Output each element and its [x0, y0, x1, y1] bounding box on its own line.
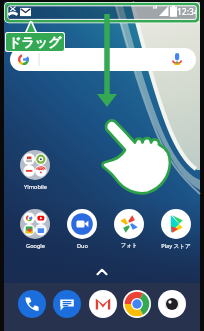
button[interactable]: Google [16, 209, 54, 250]
button[interactable]: Y!mobile [16, 150, 54, 191]
button[interactable]: Gmail [89, 290, 117, 318]
staticText: Play ストア [161, 242, 191, 250]
staticText: 12:34 [177, 6, 199, 18]
staticText: フォト [120, 242, 138, 249]
staticText: Y!mobile [24, 183, 47, 191]
staticText: Google [26, 242, 45, 250]
staticText: ドラッグ [8, 34, 62, 50]
button[interactable]: Chrome [123, 290, 151, 318]
button[interactable]: Messages [53, 290, 81, 318]
staticText: Duo [77, 242, 88, 250]
button[interactable]: Google search [10, 48, 196, 71]
button[interactable]: Camera [158, 290, 186, 318]
button[interactable]: Open app drawer [92, 262, 112, 282]
button[interactable]: フォト [110, 209, 148, 249]
button[interactable]: Play ストア [157, 209, 195, 250]
button[interactable]: Phone [18, 290, 46, 318]
button[interactable]: Duo [63, 209, 101, 250]
